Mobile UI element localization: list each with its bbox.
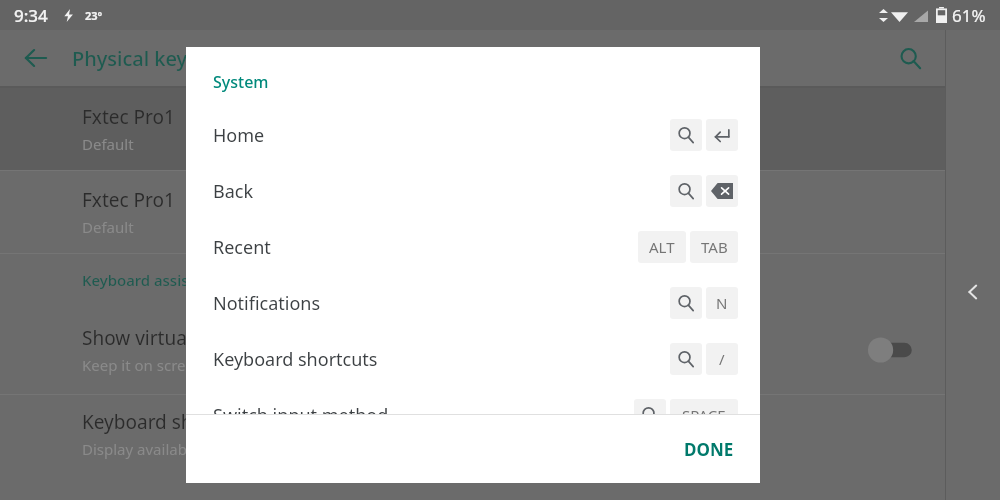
staticText: Recent — [213, 235, 271, 260]
button[interactable]: Fxtec Pro1 — [0, 171, 946, 253]
staticText: Default — [82, 134, 134, 154]
staticText: Display available shortcuts — [82, 439, 270, 459]
button[interactable]: Keyboard shortcuts — [186, 331, 760, 387]
staticText: Keyboard shortcuts — [213, 347, 378, 372]
button[interactable]: Switch input method — [186, 387, 760, 443]
button[interactable]: Back — [16, 38, 56, 78]
button[interactable]: Show virtual keyboard — [0, 306, 946, 394]
staticText: Keyboard assistance — [82, 270, 229, 290]
staticText: 23° — [85, 8, 103, 23]
button[interactable]: Recent — [186, 219, 760, 275]
button[interactable]: DONE — [670, 428, 748, 471]
staticText: Default — [82, 217, 134, 237]
staticText: Show virtual keyboard — [82, 325, 280, 351]
staticText: Notifications — [213, 291, 321, 316]
staticText: 9:34 — [14, 4, 48, 27]
staticText: 61% — [952, 4, 986, 27]
staticText: Fxtec Pro1 — [82, 187, 175, 213]
staticText: System — [213, 71, 269, 93]
staticText: SPACE — [682, 405, 726, 425]
button[interactable]: Notifications — [186, 275, 760, 331]
staticText: ALT — [649, 237, 675, 257]
button[interactable]: Navigate back — [951, 270, 995, 314]
button[interactable]: Back — [186, 163, 760, 219]
staticText: / — [719, 349, 725, 369]
staticText: Physical keyboard — [72, 45, 244, 72]
staticText: N — [716, 293, 728, 313]
staticText: Home — [213, 123, 265, 148]
staticText: Keyboard shortcuts — [82, 409, 256, 435]
button[interactable]: Search — [888, 36, 932, 80]
button[interactable]: Fxtec Pro1 — [0, 88, 946, 170]
staticText: Fxtec Pro1 — [82, 104, 175, 130]
button[interactable]: Home — [186, 107, 760, 163]
staticText: DONE — [684, 438, 734, 461]
staticText: TAB — [701, 237, 728, 257]
staticText: Back — [213, 179, 254, 204]
staticText: Keep it on screen while physical keyboar… — [82, 355, 435, 375]
staticText: Switch input method — [213, 403, 389, 428]
